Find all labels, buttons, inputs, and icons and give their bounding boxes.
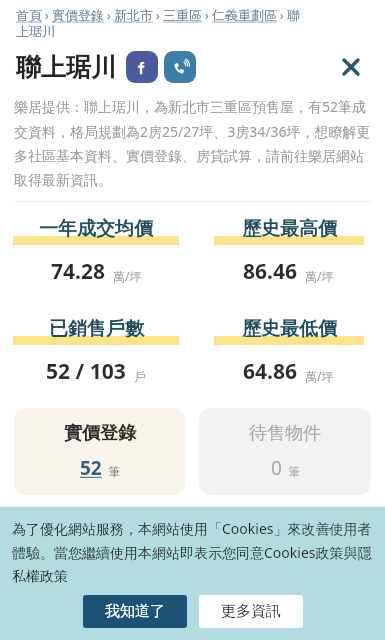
staticText: 0 bbox=[271, 455, 282, 481]
button[interactable]: 仁義重劃區 bbox=[212, 7, 277, 23]
button[interactable]: 聯 bbox=[287, 7, 300, 23]
staticText: 萬/坪 bbox=[305, 268, 334, 284]
staticText: › bbox=[104, 7, 114, 23]
button[interactable]: 首頁 bbox=[16, 7, 42, 23]
button[interactable]: 實價登錄 bbox=[14, 408, 185, 495]
staticText: 64.86 bbox=[243, 357, 297, 386]
button[interactable]: 我知道了 bbox=[83, 595, 187, 628]
staticText: 歷史最高價 bbox=[242, 217, 337, 241]
button[interactable]: Close bbox=[331, 47, 371, 87]
staticText: 樂居提供：聯上琚川，為新北市三重區預售屋，有52筆成交資料，格局規劃為2房25/… bbox=[14, 97, 371, 189]
button[interactable]: 更多資訊 bbox=[199, 595, 303, 628]
button[interactable]: 實價登錄 bbox=[52, 7, 104, 23]
staticText: 歷史最低價 bbox=[242, 317, 337, 341]
staticText: 上琚川 bbox=[16, 23, 55, 39]
staticText: 我知道了 bbox=[105, 602, 165, 621]
button[interactable]: 三重區 bbox=[163, 7, 202, 23]
button[interactable]: Share on Facebook bbox=[126, 51, 158, 83]
staticText: 實價登錄 bbox=[64, 422, 136, 445]
staticText: 筆 bbox=[288, 464, 300, 479]
staticText: 萬/坪 bbox=[113, 268, 142, 284]
staticText: 86.46 bbox=[243, 257, 297, 286]
staticText: 52 bbox=[80, 455, 102, 481]
staticText: 74.28 bbox=[51, 257, 105, 286]
staticText: › bbox=[42, 7, 52, 23]
staticText: 為了優化網站服務，本網站使用「Cookies」來改善使用者體驗。當您繼續使用本網… bbox=[12, 519, 373, 585]
staticText: 一年成交均價 bbox=[39, 217, 153, 241]
staticText: › bbox=[202, 7, 212, 23]
button[interactable]: 待售物件 bbox=[199, 408, 371, 495]
staticText: 待售物件 bbox=[249, 422, 321, 445]
staticText: 52 / 103 bbox=[46, 357, 126, 386]
staticText: 萬/坪 bbox=[305, 368, 334, 384]
staticText: › bbox=[277, 7, 287, 23]
button[interactable]: 新北市 bbox=[114, 7, 153, 23]
button[interactable]: Call bbox=[164, 51, 196, 83]
staticText: 戶 bbox=[134, 369, 146, 384]
staticText: 筆 bbox=[108, 464, 120, 479]
staticText: 更多資訊 bbox=[221, 602, 281, 621]
staticText: 已銷售戶數 bbox=[49, 317, 144, 341]
staticText: 聯上琚川 bbox=[16, 52, 116, 83]
staticText: › bbox=[153, 7, 163, 23]
